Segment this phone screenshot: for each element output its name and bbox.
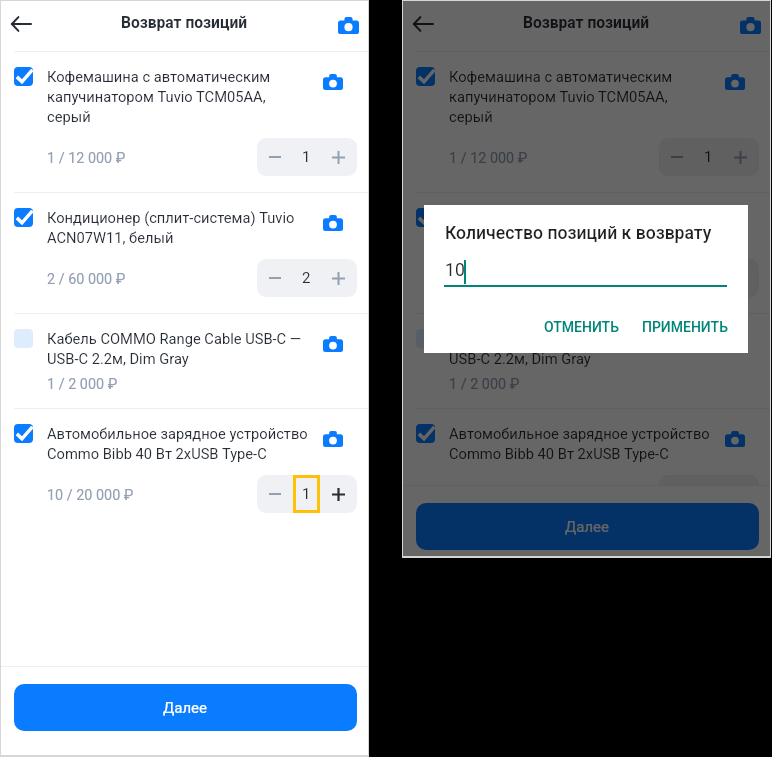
button[interactable]: Кондиционер (сплит-система) Tuvio ACN07W… — [1, 193, 368, 313]
button[interactable]: Take photo — [720, 426, 750, 452]
button[interactable]: Increase quantity — [722, 259, 759, 297]
button[interactable]: Camera — [332, 9, 364, 41]
staticText: Кабель COMMO Range Cable USB-C — USB-C 2… — [47, 328, 310, 368]
button[interactable]: Decrease quantity — [257, 138, 293, 176]
button[interactable]: Camera — [734, 9, 766, 41]
button[interactable]: Take photo — [318, 210, 348, 236]
button[interactable]: Автомобильное зарядное устройство Commo … — [1, 409, 368, 521]
button[interactable]: Increase quantity — [320, 138, 357, 176]
staticText: 1 — [704, 148, 713, 166]
button[interactable]: Take photo — [720, 331, 750, 357]
staticText: 2 / 60 000 ₽ — [47, 271, 126, 288]
button[interactable]: Далее — [14, 684, 357, 731]
staticText: Кофемашина с автоматическим капучинаторо… — [47, 66, 310, 126]
staticText: 1 / 12 000 ₽ — [449, 150, 528, 167]
button[interactable]: Кондиционер (сплит-система) Tuvio ACN07W… — [403, 193, 770, 313]
staticText: 10 — [445, 260, 465, 281]
staticText: 10 / 20 000 ₽ — [449, 487, 536, 504]
button[interactable]: Decrease quantity — [659, 138, 695, 176]
button[interactable]: Decrease quantity — [257, 259, 293, 297]
staticText: 1 — [302, 485, 311, 503]
staticText: ОТМЕНИТЬ — [544, 319, 620, 335]
button[interactable]: Increase quantity — [320, 259, 357, 297]
button[interactable]: Increase quantity — [722, 475, 759, 513]
staticText: Далее — [565, 518, 610, 536]
staticText: Кондиционер (сплит-система) Tuvio ACN07W… — [449, 207, 712, 247]
button[interactable]: ОТМЕНИТЬ — [536, 313, 628, 341]
staticText: Кофемашина с автоматическим капучинаторо… — [449, 66, 712, 126]
staticText: Количество позиций к возврату — [445, 223, 712, 244]
staticText: 1 — [302, 148, 311, 166]
button[interactable]: Кабель COMMO Range Cable USB-C — USB-C 2… — [403, 314, 770, 408]
staticText: 10 / 20 000 ₽ — [47, 487, 134, 504]
button[interactable]: Increase quantity — [320, 475, 357, 513]
button[interactable]: Кабель COMMO Range Cable USB-C — USB-C 2… — [1, 314, 368, 408]
button[interactable]: Take photo — [318, 426, 348, 452]
staticText: 1 / 2 000 ₽ — [449, 376, 520, 393]
staticText: Возврат позиций — [121, 14, 248, 32]
staticText: Кондиционер (сплит-система) Tuvio ACN07W… — [47, 207, 310, 247]
button[interactable]: Take photo — [318, 69, 348, 95]
button[interactable]: Decrease quantity — [257, 475, 293, 513]
button[interactable]: ПРИМЕНИТЬ — [634, 313, 736, 341]
button[interactable]: Далее — [416, 503, 759, 550]
button[interactable]: Take photo — [318, 331, 348, 357]
staticText: Далее — [163, 699, 208, 717]
staticText: ПРИМЕНИТЬ — [642, 319, 728, 335]
button[interactable]: Автомобильное зарядное устройство Commo … — [403, 409, 770, 521]
button[interactable]: Take photo — [720, 210, 750, 236]
button[interactable]: Take photo — [720, 69, 750, 95]
staticText: 2 / 60 000 ₽ — [449, 271, 528, 288]
staticText: Кабель COMMO Range Cable USB-C — USB-C 2… — [449, 328, 712, 368]
staticText: 2 — [302, 269, 311, 287]
button[interactable]: Increase quantity — [722, 138, 759, 176]
button[interactable]: Кофемашина с автоматическим капучинаторо… — [1, 52, 368, 192]
staticText: Автомобильное зарядное устройство Commo … — [47, 423, 310, 463]
button[interactable]: Decrease quantity — [659, 475, 695, 513]
button[interactable]: Back — [4, 7, 38, 41]
button[interactable]: Back — [406, 7, 440, 41]
button[interactable]: Decrease quantity — [659, 259, 695, 297]
staticText: Автомобильное зарядное устройство Commo … — [449, 423, 712, 463]
staticText: 1 / 2 000 ₽ — [47, 376, 118, 393]
staticText: 1 / 12 000 ₽ — [47, 150, 126, 167]
staticText: Возврат позиций — [523, 14, 650, 32]
staticText: 2 — [704, 269, 713, 287]
button[interactable]: Кофемашина с автоматическим капучинаторо… — [403, 52, 770, 192]
